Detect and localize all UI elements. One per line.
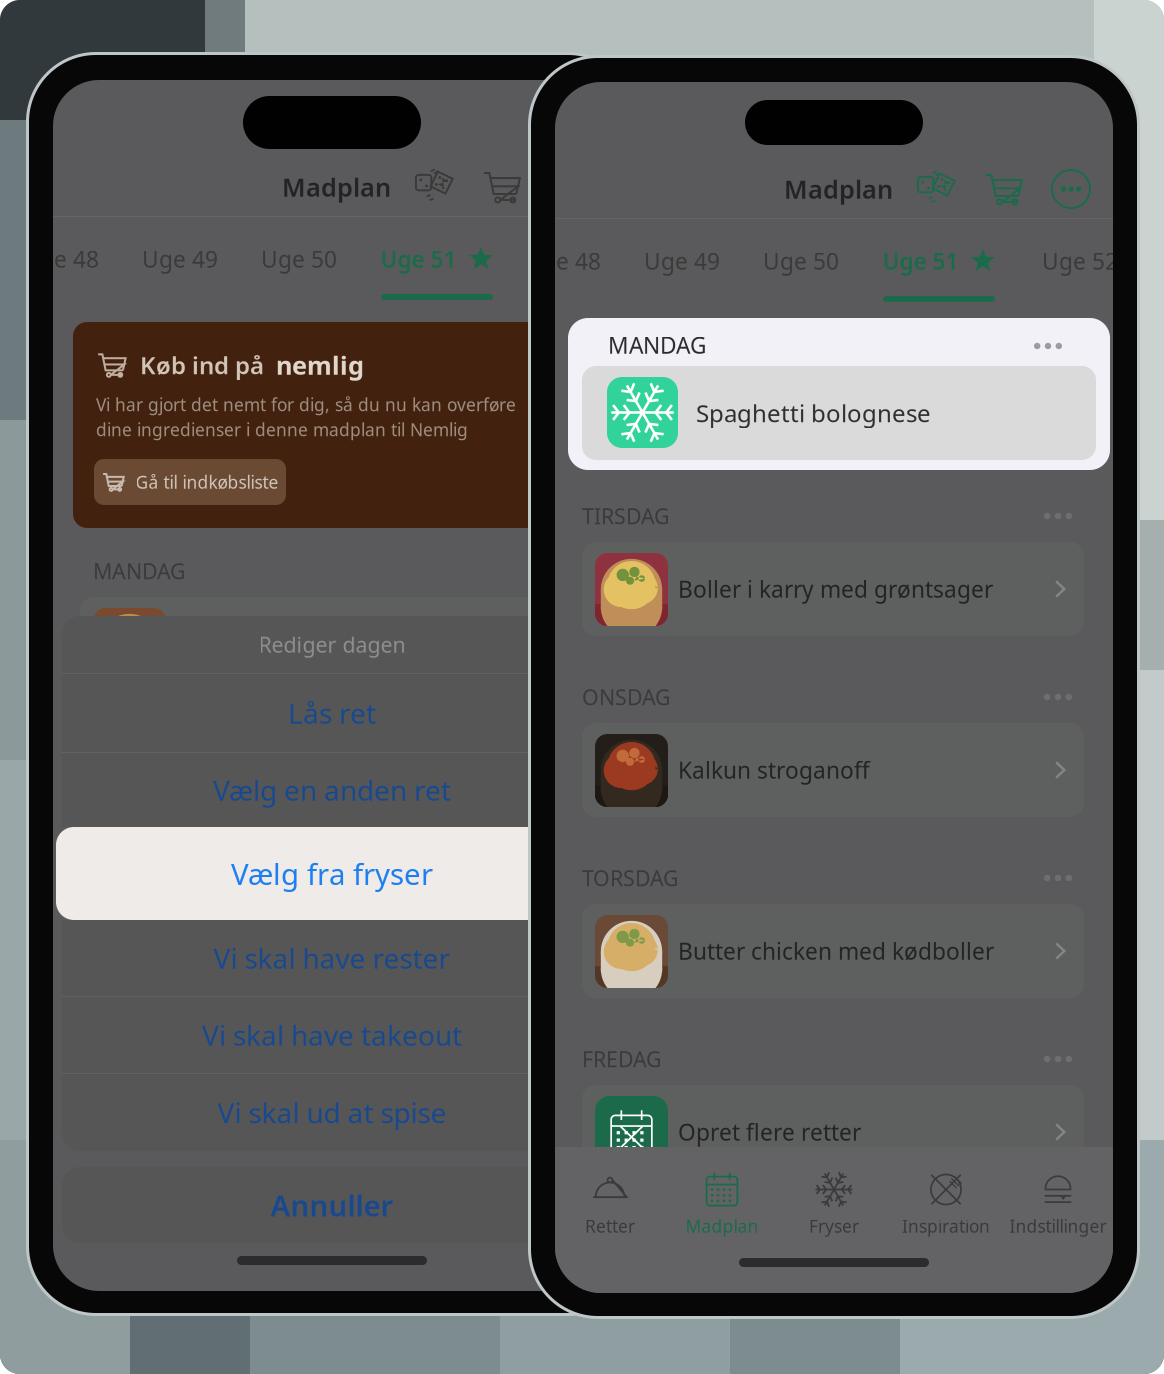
button[interactable]: Vi skal have rester <box>62 920 602 996</box>
staticText: Uge 48 <box>23 244 99 274</box>
staticText: Uge 49 <box>142 244 218 274</box>
staticText: Uge 52 <box>1042 246 1118 276</box>
staticText: Retter <box>585 1214 635 1237</box>
button[interactable]: Spaghetti bolognese <box>582 366 1096 460</box>
button[interactable]: Tilfældig ret <box>915 167 959 211</box>
button[interactable]: Vælg en anden ret <box>62 753 602 827</box>
button[interactable]: Uge 49 <box>626 233 738 289</box>
button[interactable]: Retter <box>554 1155 666 1251</box>
staticText: Inspiration <box>902 1214 990 1237</box>
staticText: Rediger dagen <box>258 630 405 659</box>
staticText: Vi skal have rester <box>213 939 450 977</box>
button[interactable]: Uge 49 <box>124 231 236 287</box>
staticText: ONSDAG <box>582 683 671 711</box>
staticText: Uge 51 <box>380 244 456 274</box>
staticText: Kalkun stroganoff <box>678 755 870 785</box>
button[interactable]: Vi skal ud at spise <box>62 1074 602 1151</box>
staticText: Uge 49 <box>644 246 720 276</box>
button[interactable]: Boller i karry med grøntsager <box>582 542 1084 636</box>
staticText: Uge 48 <box>525 246 601 276</box>
staticText: Uge 50 <box>763 246 839 276</box>
staticText: TORSDAG <box>582 864 679 892</box>
button[interactable]: Lås ret <box>62 674 602 752</box>
button[interactable]: Uge 50 <box>745 233 857 289</box>
button[interactable]: Flere valg for MANDAG <box>1028 334 1068 358</box>
button[interactable]: Madplan <box>666 1155 778 1251</box>
staticText: Uge 51 <box>882 246 958 276</box>
staticText: Gå til indkøbsliste <box>135 470 278 493</box>
button[interactable]: Opret flere retter <box>582 1085 1084 1179</box>
staticText: Vælg fra fryser <box>231 854 433 893</box>
button[interactable]: Flere valg for TORSDAG <box>1032 862 1084 894</box>
staticText: Vi har gjort det nemt for dig, så du nu … <box>96 393 516 416</box>
staticText: Madplan <box>685 1214 758 1237</box>
button[interactable]: Gå til indkøbsliste <box>94 459 286 505</box>
button[interactable]: Uge 51 <box>863 232 1015 290</box>
staticText: Indstillinger <box>1009 1214 1106 1237</box>
staticText: Opret flere retter <box>678 1117 861 1147</box>
staticText: Vi skal have takeout <box>202 1016 462 1054</box>
button[interactable]: Flere valg <box>1051 169 1091 209</box>
staticText: TIRSDAG <box>582 502 670 530</box>
staticText: Vi skal ud at spise <box>217 1094 446 1131</box>
staticText: nemlig <box>276 348 364 382</box>
button[interactable]: Uge 52 <box>1024 233 1136 289</box>
staticText: Uge 50 <box>261 244 337 274</box>
button[interactable]: Flere valg for ONSDAG <box>1032 681 1084 713</box>
staticText: dine ingredienser i denne madplan til Ne… <box>96 418 468 441</box>
button[interactable]: Uge 48 <box>507 233 619 289</box>
staticText: MANDAG <box>93 557 186 585</box>
staticText: Madplan <box>784 172 893 206</box>
button[interactable]: Vælg fra fryser <box>56 827 608 920</box>
button[interactable]: Inspiration <box>890 1155 1002 1251</box>
button[interactable]: Indstillinger <box>1002 1155 1114 1251</box>
staticText: Vælg en anden ret <box>213 771 451 809</box>
staticText: Butter chicken med kødboller <box>678 936 994 966</box>
staticText: FREDAG <box>582 1045 662 1073</box>
button[interactable]: Flere valg for TIRSDAG <box>1032 500 1084 532</box>
staticText: Fryser <box>809 1214 859 1237</box>
staticText: Madplan <box>282 170 391 204</box>
button[interactable]: Annuller <box>62 1167 602 1243</box>
button[interactable]: Uge 48 <box>5 231 117 287</box>
button[interactable]: Butter chicken med kødboller <box>582 904 1084 998</box>
button[interactable]: Flere valg for FREDAG <box>1032 1043 1084 1075</box>
staticText: Lås ret <box>288 694 376 732</box>
button[interactable]: Indkøbsliste <box>983 168 1025 210</box>
staticText: Køb ind på <box>140 349 264 381</box>
button[interactable]: Uge 50 <box>243 231 355 287</box>
staticText: Spaghetti bolognese <box>696 397 931 429</box>
staticText: Annuller <box>270 1185 393 1224</box>
staticText: Boller i karry med grøntsager <box>678 574 993 604</box>
button[interactable]: Kalkun stroganoff <box>582 723 1084 817</box>
staticText: MANDAG <box>608 330 707 360</box>
button[interactable]: Vi skal have takeout <box>62 997 602 1073</box>
button[interactable]: Fryser <box>778 1155 890 1251</box>
